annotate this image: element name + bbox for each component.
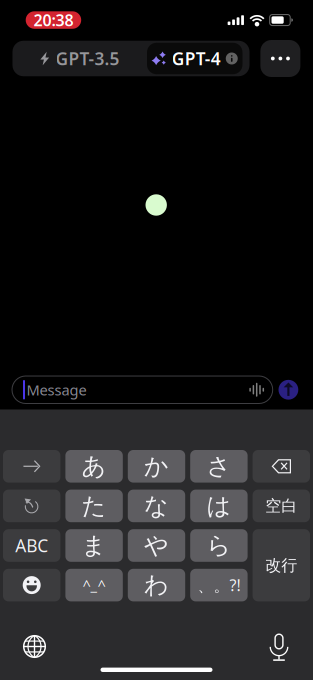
staticText: ま (82, 531, 107, 560)
staticText: 20:38 (33, 9, 73, 31)
button[interactable]: な (128, 490, 185, 522)
staticText: 、。?! (197, 574, 240, 596)
button[interactable]: さ (190, 450, 248, 483)
staticText: GPT-4 (172, 47, 221, 70)
staticText: Message (26, 380, 86, 399)
button[interactable]: た (65, 490, 123, 522)
staticText: は (206, 491, 231, 521)
staticText: や (144, 531, 169, 560)
button[interactable]: GPT-3.5 (12, 41, 147, 76)
staticText: 空白 (265, 496, 297, 516)
staticText: 改行 (265, 555, 297, 575)
staticText: ABC (15, 534, 48, 557)
button[interactable]: 改行 (253, 529, 310, 601)
staticText: さ (206, 452, 231, 481)
staticText: か (144, 452, 169, 481)
staticText: わ (144, 570, 169, 600)
staticText: ^_^ (83, 575, 106, 595)
staticText: GPT-3.5 (56, 47, 120, 70)
button[interactable]: ABC (3, 529, 60, 562)
button[interactable]: ^_^ (65, 569, 123, 601)
button[interactable]: More options (260, 40, 300, 77)
button[interactable]: Send (278, 380, 298, 400)
staticText: な (144, 491, 169, 521)
button[interactable]: Next keyboard (11, 626, 57, 666)
staticText: ら (206, 531, 231, 560)
button[interactable]: わ (128, 569, 185, 601)
button[interactable]: GPT-4 (147, 43, 242, 74)
button[interactable] (3, 569, 60, 601)
button[interactable]: か (128, 450, 185, 483)
button[interactable]: Dictation (256, 626, 302, 666)
button[interactable]: ま (65, 529, 123, 562)
button[interactable] (3, 490, 60, 522)
staticText: あ (82, 452, 107, 481)
button[interactable]: は (190, 490, 248, 522)
button[interactable]: あ (65, 450, 123, 483)
button[interactable]: や (128, 529, 185, 562)
button[interactable] (253, 450, 310, 483)
button[interactable]: 、。?! (190, 569, 248, 601)
button[interactable]: ら (190, 529, 248, 562)
button[interactable] (3, 450, 60, 483)
button[interactable]: 空白 (253, 490, 310, 522)
staticText: た (82, 491, 107, 521)
